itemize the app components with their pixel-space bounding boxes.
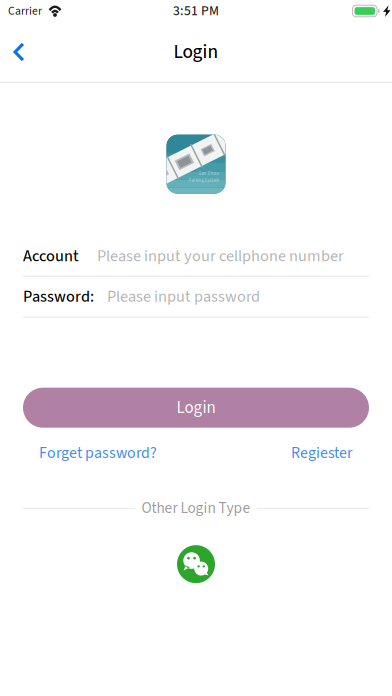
staticText: Account bbox=[23, 245, 79, 268]
button[interactable]: Login bbox=[23, 388, 369, 428]
button[interactable]: Forget password? bbox=[39, 442, 157, 464]
staticText: Password: bbox=[23, 285, 94, 308]
staticText: Forget password? bbox=[39, 442, 157, 464]
staticText: Please input your cellphone number bbox=[97, 245, 344, 268]
button[interactable]: Back bbox=[4, 30, 34, 74]
staticText: Please input password bbox=[107, 285, 260, 308]
staticText: Carrier bbox=[8, 3, 42, 19]
staticText: Parking System bbox=[188, 177, 219, 184]
button[interactable]: Regiester bbox=[291, 442, 353, 464]
button[interactable]: Sign in with WeChat bbox=[177, 545, 215, 583]
staticText: Gan Zhou bbox=[198, 170, 219, 177]
staticText: Other Login Type bbox=[141, 497, 250, 519]
staticText: Login bbox=[176, 396, 215, 420]
staticText: Regiester bbox=[291, 442, 353, 464]
staticText: 3:51 PM bbox=[173, 1, 219, 21]
staticText: Login bbox=[173, 38, 218, 66]
